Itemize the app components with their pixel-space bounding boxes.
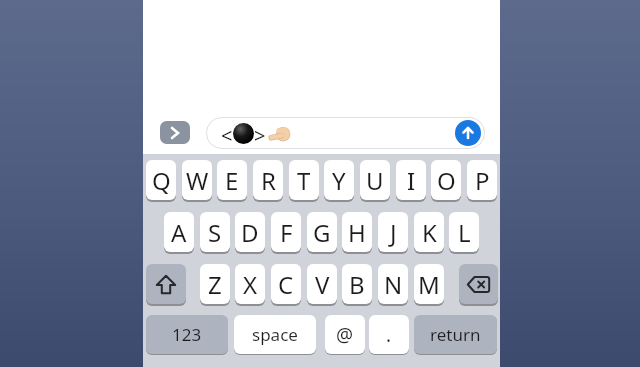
button[interactable]: X: [235, 264, 265, 304]
button[interactable]: [160, 121, 190, 144]
staticText: L: [458, 216, 471, 249]
staticText: B: [349, 268, 365, 301]
button[interactable]: N: [378, 264, 408, 304]
staticText: K: [422, 216, 437, 249]
staticText: Q: [152, 164, 171, 197]
button[interactable]: .: [369, 315, 409, 354]
staticText: I: [407, 164, 416, 197]
staticText: C: [278, 268, 294, 301]
button[interactable]: @: [325, 315, 365, 354]
staticText: P: [475, 164, 490, 197]
staticText: M: [418, 268, 440, 301]
button[interactable]: R: [253, 160, 283, 200]
button[interactable]: Z: [200, 264, 230, 304]
staticText: X: [243, 268, 258, 301]
button[interactable]: U: [360, 160, 390, 200]
button[interactable]: D: [235, 212, 265, 252]
staticText: S: [208, 216, 222, 249]
staticText: H: [348, 216, 366, 249]
button[interactable]: F: [271, 212, 301, 252]
button[interactable]: 123: [146, 315, 228, 354]
button[interactable]: K: [414, 212, 444, 252]
staticText: return: [430, 323, 481, 346]
button[interactable]: P: [467, 160, 497, 200]
staticText: space: [252, 323, 298, 346]
button[interactable]: S: [200, 212, 230, 252]
button[interactable]: E: [217, 160, 247, 200]
button[interactable]: L: [449, 212, 479, 252]
button[interactable]: B: [342, 264, 372, 304]
staticText: >: [254, 122, 266, 149]
staticText: O: [437, 164, 456, 197]
button[interactable]: Y: [324, 160, 354, 200]
staticText: .: [386, 322, 392, 348]
button[interactable]: C: [271, 264, 301, 304]
button[interactable]: O: [431, 160, 461, 200]
staticText: 123: [172, 323, 202, 346]
staticText: R: [261, 164, 276, 197]
button[interactable]: M: [414, 264, 444, 304]
staticText: A: [171, 216, 187, 249]
staticText: Y: [332, 164, 346, 197]
button[interactable]: G: [307, 212, 337, 252]
staticText: U: [366, 164, 384, 197]
staticText: <: [221, 122, 233, 149]
staticText: Z: [208, 268, 222, 301]
staticText: E: [225, 164, 239, 197]
staticText: V: [315, 268, 330, 301]
staticText: F: [280, 216, 293, 249]
button[interactable]: H: [342, 212, 372, 252]
button[interactable]: J: [378, 212, 408, 252]
staticText: J: [390, 216, 397, 249]
staticText: T: [297, 164, 311, 197]
button[interactable]: I: [396, 160, 426, 200]
staticText: W: [186, 164, 209, 197]
button[interactable]: Q: [146, 160, 176, 200]
staticText: N: [384, 268, 403, 301]
staticText: G: [313, 216, 331, 249]
button[interactable]: W: [182, 160, 212, 200]
button[interactable]: return: [414, 315, 497, 354]
button[interactable]: [455, 120, 481, 146]
button[interactable]: space: [234, 315, 316, 354]
staticText: @: [336, 322, 354, 348]
staticText: D: [241, 216, 259, 249]
button[interactable]: A: [164, 212, 194, 252]
button[interactable]: V: [307, 264, 337, 304]
button[interactable]: [459, 264, 498, 304]
button[interactable]: [206, 117, 485, 149]
button[interactable]: [146, 264, 186, 304]
button[interactable]: T: [289, 160, 319, 200]
